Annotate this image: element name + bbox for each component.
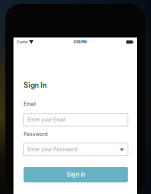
staticText: Password: [24, 131, 48, 137]
staticText: Sign in: [67, 171, 85, 178]
button[interactable]: Sign in: [24, 167, 128, 182]
staticText: Email: [24, 101, 36, 107]
staticText: Carrier: [17, 40, 28, 44]
staticText: Enter your Email: [27, 117, 65, 123]
staticText: 3:58 PM: [73, 40, 86, 44]
staticText: Enter your Password: [27, 146, 77, 152]
staticText: Sign In: [24, 81, 47, 89]
